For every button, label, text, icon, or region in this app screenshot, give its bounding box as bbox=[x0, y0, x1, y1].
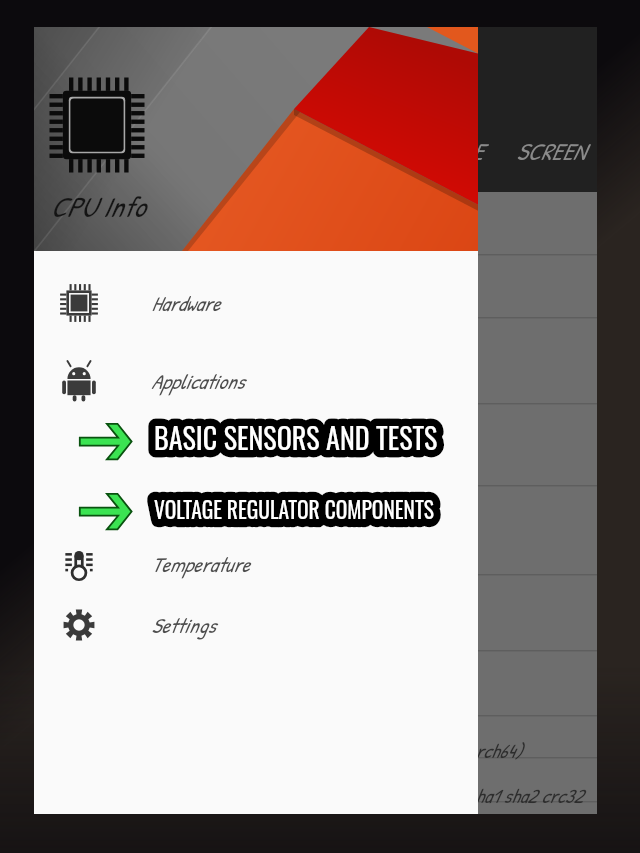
button[interactable]: Temperature bbox=[34, 537, 478, 591]
staticText: Temperature bbox=[151, 550, 250, 578]
staticText: BASIC SENSORS AND TESTS bbox=[154, 417, 437, 458]
button[interactable]: Applications bbox=[34, 354, 478, 408]
button[interactable]: Hardware bbox=[34, 276, 478, 330]
staticText: Settings bbox=[151, 611, 216, 639]
button[interactable]: Settings bbox=[34, 598, 478, 652]
button[interactable] bbox=[34, 477, 478, 539]
staticText: VOLTAGE REGULATOR COMPONENTS bbox=[154, 491, 434, 526]
staticText: BASIC SENSORS AND TESTS bbox=[154, 417, 437, 458]
button[interactable]: VOLTAGE REGULATOR COMPONENTS bbox=[154, 491, 434, 526]
staticText: Hardware bbox=[151, 289, 220, 317]
staticText: rch64) bbox=[475, 737, 522, 764]
staticText: SCREEN bbox=[516, 135, 586, 167]
staticText: E bbox=[472, 135, 483, 167]
button[interactable]: BASIC SENSORS AND TESTS bbox=[154, 417, 437, 458]
staticText: Applications bbox=[151, 367, 244, 395]
button[interactable]: CPU Info bbox=[34, 27, 478, 251]
staticText: CPU Info bbox=[50, 187, 145, 226]
button[interactable] bbox=[34, 408, 478, 470]
staticText: VOLTAGE REGULATOR COMPONENTS bbox=[154, 491, 434, 526]
staticText: ha1 sha2 crc32 bbox=[475, 782, 583, 809]
